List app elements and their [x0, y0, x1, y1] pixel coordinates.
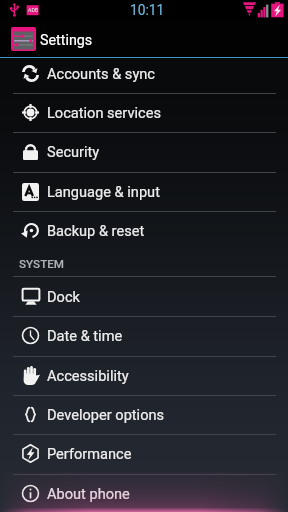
- button[interactable]: Language & input: [0, 172, 288, 211]
- staticText: SYSTEM: [19, 257, 65, 271]
- staticText: Language & input: [47, 183, 160, 200]
- button[interactable]: Settings app icon: [11, 27, 36, 51]
- button[interactable]: Dock: [0, 277, 288, 316]
- staticText: ADB: [28, 7, 39, 13]
- button[interactable]: Location services: [0, 93, 288, 132]
- staticText: Location services: [47, 104, 161, 121]
- button[interactable]: About phone: [0, 474, 288, 512]
- staticText: Backup & reset: [47, 222, 145, 239]
- button[interactable]: Performance: [0, 434, 288, 473]
- staticText: Performance: [47, 445, 132, 462]
- staticText: Date & time: [47, 327, 123, 344]
- staticText: Accounts & sync: [47, 65, 155, 82]
- button[interactable]: Accounts & sync: [0, 54, 288, 93]
- button[interactable]: Backup & reset: [0, 211, 288, 250]
- button[interactable]: Security: [0, 132, 288, 171]
- button[interactable]: Developer options: [0, 395, 288, 434]
- staticText: Security: [47, 143, 100, 160]
- button[interactable]: Accessibility: [0, 356, 288, 395]
- staticText: Settings: [40, 32, 93, 49]
- staticText: About phone: [47, 485, 130, 502]
- staticText: Developer options: [47, 406, 165, 423]
- staticText: Dock: [47, 288, 80, 305]
- button[interactable]: Date & time: [0, 316, 288, 355]
- staticText: Accessibility: [47, 367, 129, 384]
- staticText: 10:11: [130, 2, 165, 18]
